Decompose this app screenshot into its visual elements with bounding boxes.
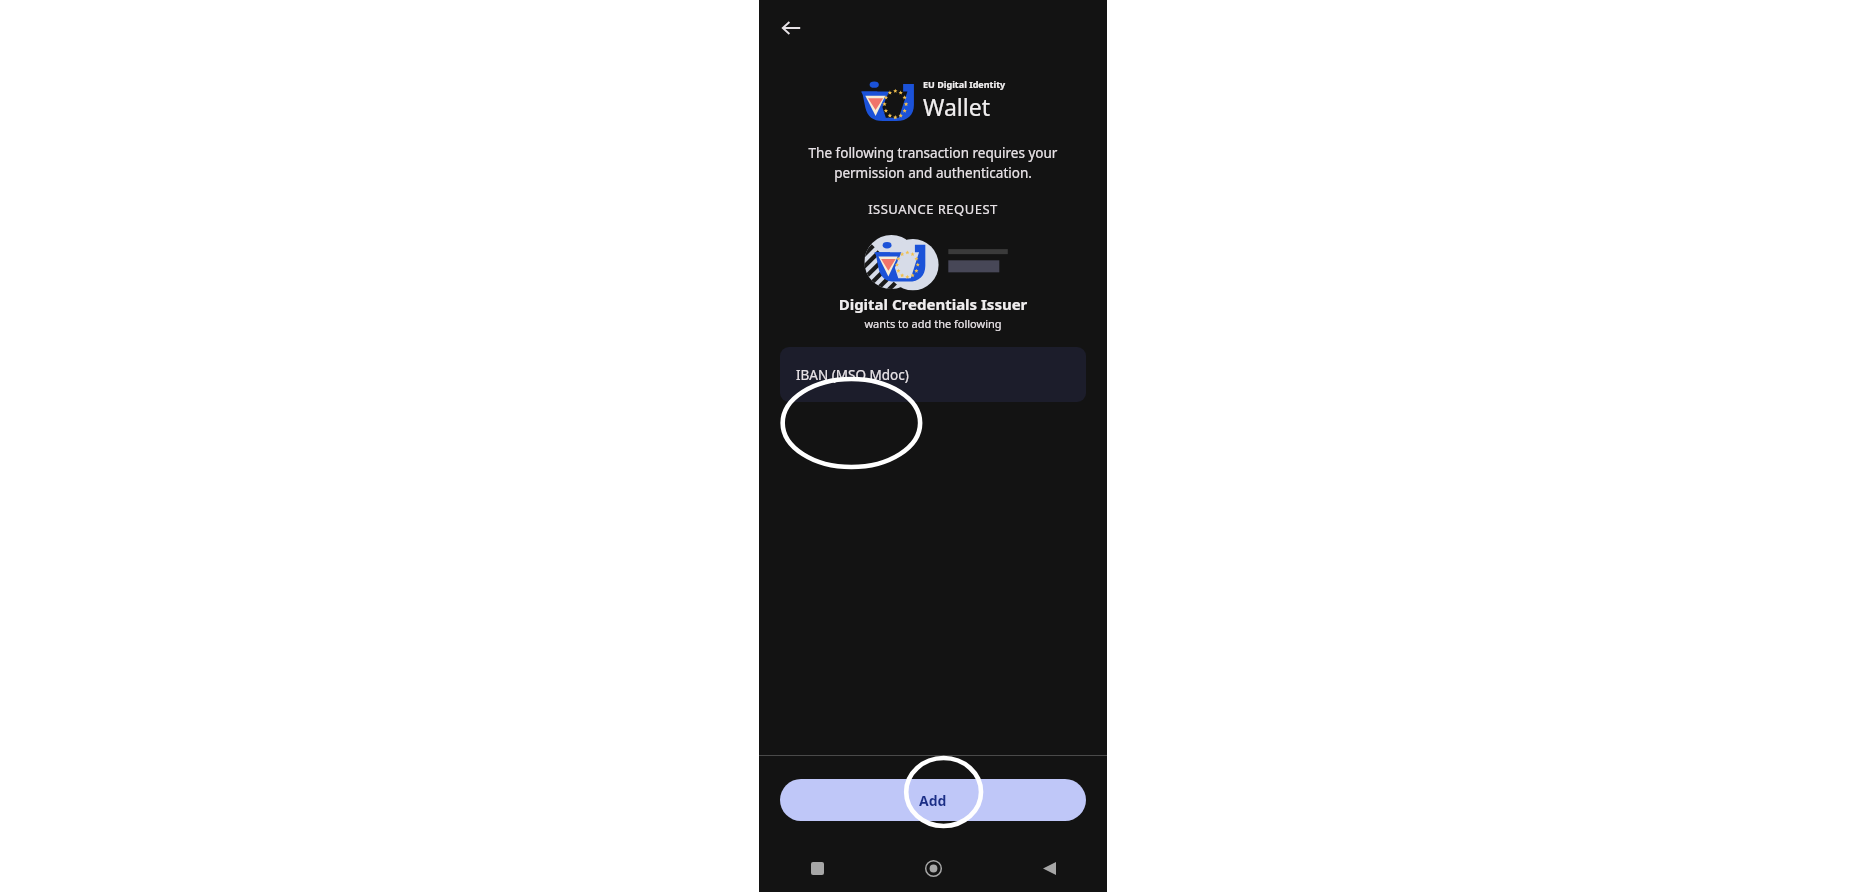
staticText: Digital Credentials Issuer — [759, 294, 1107, 314]
staticText: wants to add the following — [759, 316, 1107, 331]
staticText: Add — [919, 791, 947, 810]
button[interactable]: Home — [875, 844, 991, 892]
button[interactable]: Back — [991, 844, 1107, 892]
button[interactable]: IBAN (MSO Mdoc) — [780, 347, 1086, 402]
button[interactable]: Add — [780, 779, 1086, 821]
staticText: Wallet — [923, 91, 990, 122]
button[interactable]: Back — [771, 8, 811, 48]
staticText: EU Digital Identity — [923, 78, 1006, 90]
button[interactable]: Recent apps — [759, 844, 875, 892]
staticText: The following transaction requires your … — [777, 144, 1089, 182]
staticText: IBAN (MSO Mdoc) — [796, 366, 909, 384]
staticText: ISSUANCE REQUEST — [759, 200, 1107, 218]
